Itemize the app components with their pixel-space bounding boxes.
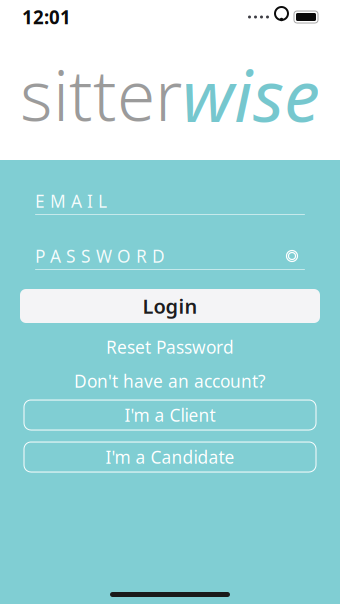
staticText: Reset Password (106, 335, 234, 358)
staticText: I'm a Client (124, 403, 215, 426)
button[interactable]: Login (20, 289, 320, 323)
staticText: E M A I L (35, 189, 107, 212)
staticText: sitter (20, 48, 182, 140)
staticText: Login (142, 293, 197, 319)
button[interactable]: I'm a Candidate (24, 442, 316, 472)
button[interactable]: Don't have an account? (0, 371, 340, 391)
staticText: P A S S W O R D (35, 244, 165, 267)
staticText: Don't have an account? (74, 369, 266, 392)
staticText: 12:01 (22, 5, 71, 29)
staticText: wise (182, 46, 320, 142)
button[interactable]: I'm a Client (24, 400, 316, 430)
button[interactable]: Show password (279, 245, 305, 267)
staticText: I'm a Candidate (105, 445, 234, 468)
button[interactable]: Reset Password (0, 337, 340, 357)
